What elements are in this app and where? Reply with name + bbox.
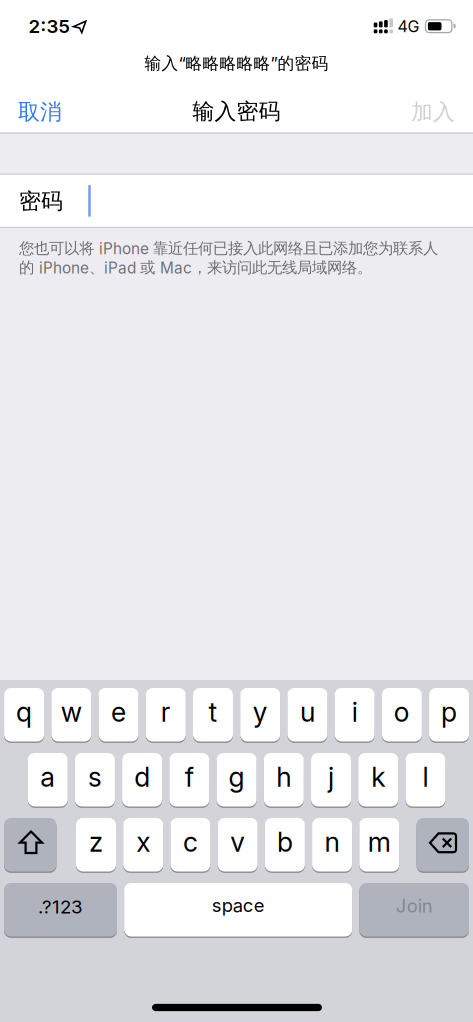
staticText: a bbox=[40, 761, 55, 793]
button[interactable]: w bbox=[51, 688, 91, 741]
staticText: 加入 bbox=[411, 98, 455, 126]
button[interactable]: j bbox=[311, 753, 351, 806]
staticText: n bbox=[325, 826, 340, 858]
staticText: .?123 bbox=[38, 895, 83, 918]
staticText: v bbox=[230, 826, 245, 858]
button[interactable]: b bbox=[265, 818, 305, 871]
staticText: e bbox=[111, 696, 126, 728]
button[interactable]: i bbox=[335, 688, 375, 741]
staticText: o bbox=[394, 696, 410, 728]
button[interactable]: g bbox=[217, 753, 257, 806]
staticText: 4G bbox=[397, 17, 419, 36]
staticText: 输入“略略略略略”的密码 bbox=[144, 53, 328, 74]
button[interactable]: 加入 bbox=[395, 90, 471, 134]
button[interactable]: d bbox=[122, 753, 162, 806]
staticText: 密码 bbox=[19, 187, 63, 215]
button[interactable]: a bbox=[28, 753, 68, 806]
staticText: q bbox=[16, 696, 32, 728]
staticText: g bbox=[229, 761, 245, 793]
staticText: t bbox=[208, 696, 217, 728]
staticText: m bbox=[368, 826, 391, 858]
button[interactable]: Shift bbox=[4, 818, 56, 871]
button[interactable]: c bbox=[170, 818, 210, 871]
button[interactable]: 密码 bbox=[0, 175, 473, 227]
button[interactable]: s bbox=[75, 753, 115, 806]
staticText: p bbox=[441, 696, 457, 728]
button[interactable]: x bbox=[123, 818, 163, 871]
button[interactable]: z bbox=[76, 818, 116, 871]
staticText: k bbox=[371, 761, 385, 793]
button[interactable]: e bbox=[98, 688, 138, 741]
staticText: y bbox=[253, 696, 268, 728]
staticText: l bbox=[422, 761, 428, 793]
staticText: b bbox=[277, 826, 293, 858]
button[interactable]: f bbox=[169, 753, 209, 806]
button[interactable]: t bbox=[193, 688, 233, 741]
staticText: i bbox=[352, 696, 358, 728]
staticText: 2:35 bbox=[28, 15, 69, 38]
button[interactable]: v bbox=[218, 818, 258, 871]
button[interactable]: q bbox=[4, 688, 44, 741]
button[interactable]: h bbox=[264, 753, 304, 806]
button[interactable]: space bbox=[124, 883, 352, 936]
button[interactable]: o bbox=[382, 688, 422, 741]
staticText: c bbox=[183, 826, 198, 858]
button[interactable]: .?123 bbox=[4, 883, 117, 936]
button[interactable]: r bbox=[146, 688, 186, 741]
staticText: d bbox=[134, 761, 150, 793]
staticText: u bbox=[300, 696, 315, 728]
button[interactable]: l bbox=[405, 753, 445, 806]
staticText: space bbox=[212, 894, 265, 916]
button[interactable]: Join bbox=[359, 883, 469, 936]
staticText: Join bbox=[396, 895, 433, 917]
staticText: s bbox=[88, 761, 102, 793]
button[interactable]: n bbox=[312, 818, 352, 871]
button[interactable]: u bbox=[287, 688, 327, 741]
staticText: r bbox=[161, 696, 171, 728]
button[interactable]: k bbox=[358, 753, 398, 806]
button[interactable]: 取消 bbox=[2, 90, 78, 134]
staticText: x bbox=[136, 826, 150, 858]
staticText: 取消 bbox=[18, 98, 62, 126]
button[interactable]: m bbox=[359, 818, 399, 871]
staticText: 您也可以将 iPhone 靠近任何已接入此网络且已添加您为联系人 的 iPhon… bbox=[19, 239, 438, 277]
staticText: w bbox=[61, 696, 82, 728]
staticText: 输入密码 bbox=[192, 98, 280, 125]
button[interactable]: y bbox=[240, 688, 280, 741]
staticText: h bbox=[276, 761, 291, 793]
staticText: j bbox=[328, 761, 334, 793]
button[interactable]: p bbox=[429, 688, 469, 741]
staticText: z bbox=[89, 826, 103, 858]
staticText: f bbox=[185, 761, 194, 793]
button[interactable]: Delete bbox=[416, 818, 469, 871]
